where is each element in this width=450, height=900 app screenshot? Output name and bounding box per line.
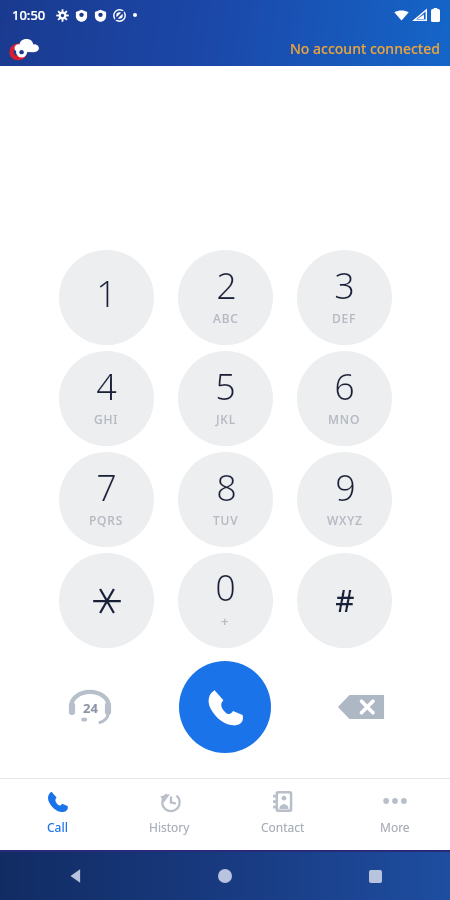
button[interactable]: Home bbox=[150, 852, 300, 900]
staticText: 6 bbox=[334, 362, 355, 411]
staticText: 5 bbox=[215, 362, 236, 411]
button[interactable]: Backspace bbox=[271, 657, 450, 757]
staticText: 24 bbox=[83, 699, 98, 717]
button[interactable]: Call bbox=[0, 779, 113, 850]
button[interactable]: Contact bbox=[226, 779, 339, 850]
button[interactable]: 5 bbox=[178, 351, 273, 446]
staticText: TUV bbox=[213, 512, 239, 528]
staticText: GHI bbox=[94, 411, 119, 427]
button[interactable]: More bbox=[339, 779, 450, 850]
button[interactable] bbox=[59, 553, 154, 648]
staticText: 10:50 bbox=[12, 6, 46, 24]
button[interactable]: 2 bbox=[178, 250, 273, 345]
staticText: 4 bbox=[96, 362, 117, 411]
staticText: More bbox=[380, 819, 410, 835]
staticText: 8 bbox=[216, 463, 237, 512]
button[interactable]: 0 bbox=[178, 553, 273, 648]
staticText: 0 bbox=[215, 563, 236, 612]
staticText: Contact bbox=[261, 819, 305, 835]
staticText: # bbox=[335, 580, 355, 621]
staticText: 1 bbox=[96, 269, 117, 318]
button[interactable]: 3 bbox=[297, 250, 392, 345]
staticText: No account connected bbox=[290, 39, 440, 58]
staticText: + bbox=[221, 612, 230, 630]
button[interactable]: Recents bbox=[300, 852, 450, 900]
button[interactable]: 1 bbox=[59, 250, 154, 345]
staticText: 3 bbox=[334, 261, 355, 310]
staticText: JKL bbox=[216, 411, 236, 427]
staticText: PQRS bbox=[89, 512, 124, 528]
button[interactable]: 9 bbox=[297, 452, 392, 547]
button[interactable]: Call bbox=[179, 661, 271, 753]
button[interactable]: 6 bbox=[297, 351, 392, 446]
staticText: MNO bbox=[328, 411, 361, 427]
staticText: Call bbox=[47, 819, 68, 835]
staticText: DEF bbox=[332, 310, 357, 326]
staticText: ABC bbox=[213, 310, 239, 326]
staticText: 9 bbox=[335, 463, 356, 512]
other: App logo bbox=[8, 35, 42, 61]
staticText: 7 bbox=[96, 463, 117, 512]
button[interactable]: 4 bbox=[59, 351, 154, 446]
button[interactable]: 24 hour support bbox=[0, 657, 179, 757]
button[interactable]: Back bbox=[0, 852, 150, 900]
button[interactable]: 8 bbox=[178, 452, 273, 547]
button[interactable]: 7 bbox=[59, 452, 154, 547]
staticText: History bbox=[149, 819, 190, 835]
button[interactable]: # bbox=[297, 553, 392, 648]
staticText: 2 bbox=[216, 261, 237, 310]
button[interactable]: History bbox=[113, 779, 226, 850]
staticText: WXYZ bbox=[327, 512, 363, 528]
